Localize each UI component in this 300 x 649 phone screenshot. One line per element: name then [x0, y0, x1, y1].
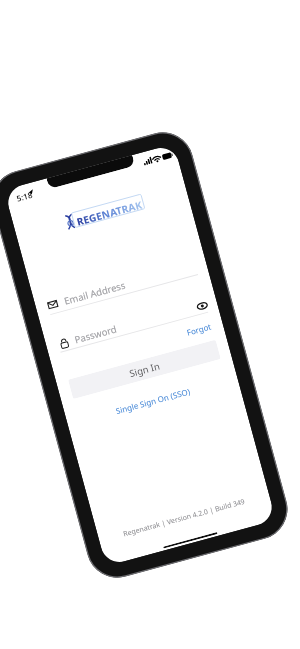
staticText: REGENATRAK: [75, 197, 144, 229]
staticText: Password: [73, 322, 118, 346]
staticText: 5:18: [15, 189, 33, 204]
staticText: Regenatrak | Version 4.2.0 | Build 349: [122, 497, 246, 539]
button[interactable]: Sign In: [68, 340, 221, 399]
staticText: Sign In: [128, 359, 161, 380]
staticText: Single Sign On (SSO): [114, 385, 191, 416]
button[interactable]: Forgot?: [185, 320, 214, 338]
staticText: Email Address: [63, 279, 127, 308]
staticText: Forgot?: [185, 320, 214, 338]
button[interactable]: Single Sign On (SSO): [77, 374, 228, 426]
button[interactable]: Show password: [195, 299, 208, 312]
